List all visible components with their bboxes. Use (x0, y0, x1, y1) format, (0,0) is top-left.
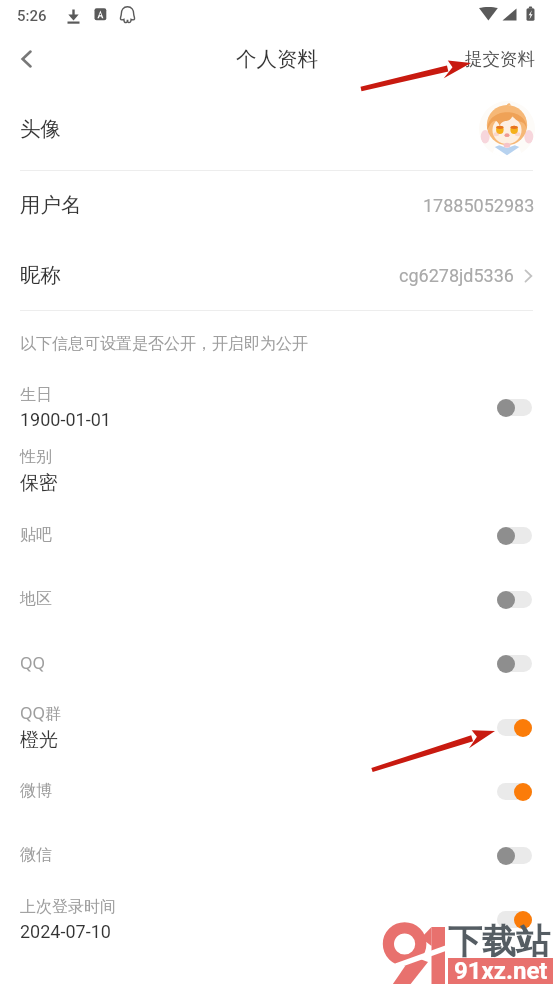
button[interactable]: QQ (0, 631, 553, 695)
button[interactable]: 地区 (0, 567, 553, 631)
staticText: QQ群 (20, 702, 61, 724)
button[interactable]: 生日 (0, 375, 553, 439)
staticText: QQ (20, 652, 45, 674)
button[interactable]: 上次登录时间 (0, 887, 553, 951)
button[interactable]: 性别 (0, 439, 553, 503)
button[interactable]: QQ群 switch (497, 718, 532, 737)
staticText: 地区 (20, 589, 52, 609)
staticText: 91xz.net (454, 957, 548, 983)
button[interactable]: 上次登录时间 switch (497, 910, 532, 929)
staticText: 微博 (20, 781, 52, 801)
staticText: 1900-01-01 (20, 409, 111, 430)
staticText: 提交资料 (465, 48, 535, 70)
button[interactable]: 微博 (0, 759, 553, 823)
staticText: 17885052983 (423, 195, 535, 216)
staticText: 以下信息可设置是否公开，开启即为公开 (20, 334, 308, 354)
staticText: 2024-07-10 (20, 921, 111, 942)
staticText: 昵称 (20, 262, 61, 288)
button[interactable]: Back (3, 35, 51, 83)
button[interactable]: 微博 switch (497, 782, 532, 801)
staticText: 微信 (20, 845, 52, 865)
staticText: 下载站 (448, 920, 550, 963)
staticText: 保密 (20, 471, 58, 495)
button[interactable]: QQ switch (497, 654, 532, 673)
staticText: 性别 (20, 447, 52, 467)
staticText: 生日 (20, 385, 52, 405)
button[interactable]: 贴吧 switch (497, 526, 532, 545)
button[interactable]: 用户名 (0, 170, 553, 240)
staticText: 用户名 (20, 192, 82, 218)
button[interactable]: QQ群 (0, 695, 553, 759)
button[interactable]: 提交资料 (447, 36, 553, 82)
button[interactable]: 生日 switch (497, 398, 532, 417)
staticText: 头像 (20, 116, 61, 142)
button[interactable]: 地区 switch (497, 590, 532, 609)
staticText: 贴吧 (20, 525, 52, 545)
staticText: 5:26 (17, 7, 47, 25)
button[interactable]: 微信 (0, 823, 553, 887)
staticText: 橙光 (20, 728, 58, 752)
button[interactable]: 昵称 (0, 240, 553, 310)
staticText: cg6278jd5336 (399, 265, 514, 286)
button[interactable]: 微信 switch (497, 846, 532, 865)
staticText: 个人资料 (236, 46, 318, 72)
button[interactable]: 贴吧 (0, 503, 553, 567)
staticText: 上次登录时间 (20, 897, 116, 917)
button[interactable]: 头像 (0, 88, 553, 170)
